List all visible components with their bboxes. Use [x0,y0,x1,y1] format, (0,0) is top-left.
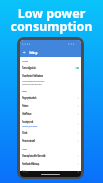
staticText: Share a photo of the Vbmobile [22,154,46,158]
button[interactable]: Setting [22,168,79,176]
staticText: abcdefgh@example.com [22,125,38,128]
button[interactable]: Turn on App Lock [22,64,79,72]
staticText: Hide Picture [22,112,32,116]
button[interactable]: Feedback of follow-up [22,160,79,168]
staticText: Feedback of follow-up [22,162,39,166]
button[interactable]: Fingerprint unlock [22,94,79,102]
staticText: Pattern [22,104,28,108]
staticText: Protect uninstall [22,139,35,143]
button[interactable]: Hide Picture [22,110,79,118]
button[interactable]: Mode [22,129,79,137]
staticText: Turn on App Lock [22,66,36,70]
button[interactable]: Back [20,48,38,57]
button[interactable]: Share a photo of the Vbmobile [22,152,79,160]
button[interactable]: Show Service Notifications [22,72,79,87]
staticText: Fingerprint unlock [22,96,37,100]
staticText: Low power consumption [0,5,103,35]
staticText: Security email [22,120,33,124]
staticText: Setting [22,170,28,174]
staticText: Other [22,147,27,150]
staticText: Mode [22,131,28,135]
button[interactable]: Security email [22,118,79,129]
button[interactable]: Protect uninstall [22,137,79,145]
staticText: General [22,59,28,62]
staticText: Safety [22,89,27,92]
staticText: To stay in the foreground and reduce the… [22,80,44,86]
staticText: Show Service Notifications [22,74,43,78]
staticText: Settings [29,51,38,55]
button[interactable]: Pattern [22,102,79,110]
